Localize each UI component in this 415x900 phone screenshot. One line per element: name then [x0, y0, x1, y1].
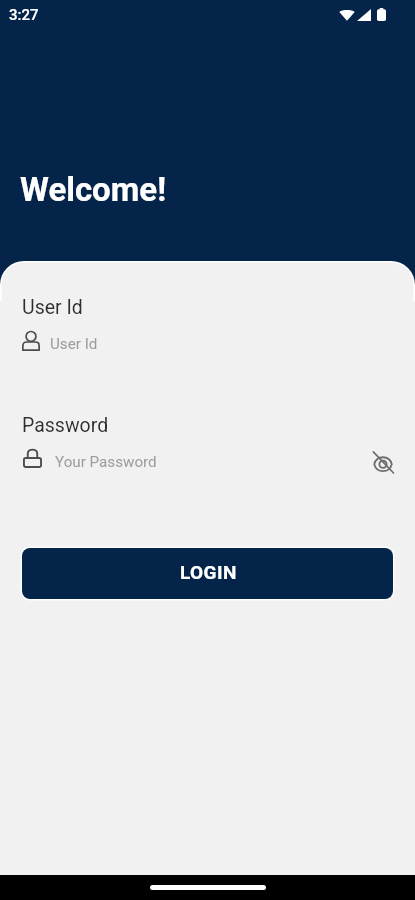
staticText: User Id: [50, 335, 98, 353]
staticText: LOGIN: [180, 561, 237, 583]
staticText: User Id: [22, 296, 83, 319]
staticText: Password: [22, 414, 109, 437]
staticText: 3:27: [9, 6, 39, 24]
button[interactable]: Show password: [368, 450, 398, 474]
button[interactable]: LOGIN: [22, 548, 393, 599]
staticText: Your Password: [55, 453, 157, 471]
staticText: Welcome!: [20, 170, 167, 209]
